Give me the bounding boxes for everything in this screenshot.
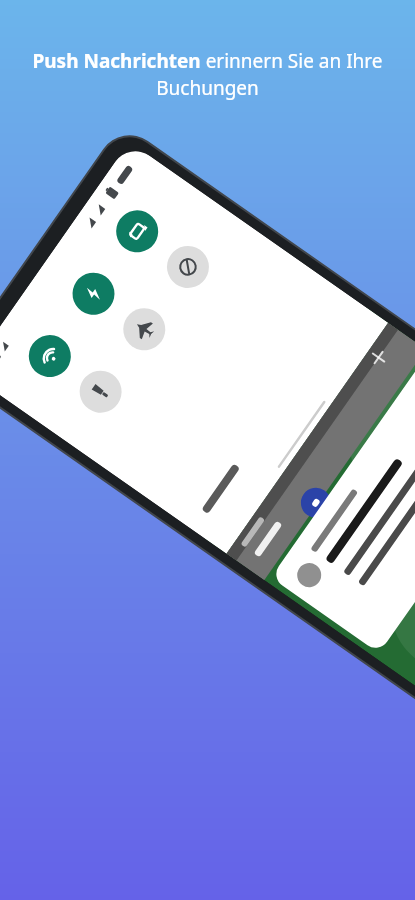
staticText: Push Nachrichten erinnern Sie an Ihre Bu… xyxy=(26,48,389,101)
